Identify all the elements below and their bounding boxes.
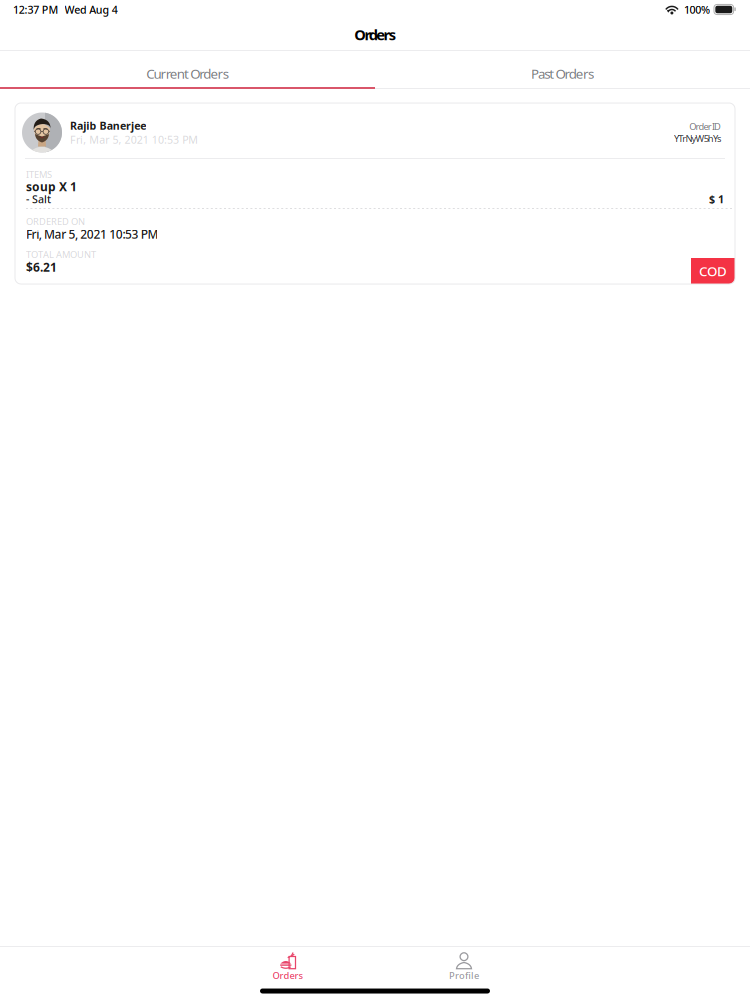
button[interactable]: COD [691, 258, 735, 284]
staticText: Rajib Banerjee [70, 118, 146, 133]
staticText: - Salt [26, 192, 51, 206]
staticText: Orders [272, 969, 303, 982]
staticText: 12:37 PM [13, 2, 59, 17]
staticText: Fri, Mar 5, 2021 10:53 PM [70, 132, 198, 147]
staticText: Orders [354, 25, 396, 44]
button[interactable]: Current Orders [0, 51, 375, 89]
staticText: COD [699, 262, 727, 280]
staticText: YTrNyW5hYs [674, 132, 721, 145]
staticText: soup X 1 [26, 178, 77, 194]
staticText: $6.21 [26, 259, 57, 275]
staticText: $ 1 [709, 192, 724, 206]
staticText: 100% [684, 2, 710, 17]
staticText: Wed Aug 4 [65, 2, 118, 17]
button[interactable]: Profile [376, 950, 552, 982]
staticText: ORDERED ON [26, 215, 85, 228]
button[interactable]: Past Orders [375, 51, 750, 89]
staticText: ITEMS [26, 168, 52, 181]
staticText: Fri, Mar 5, 2021 10:53 PM [26, 226, 158, 242]
staticText: Order ID [689, 120, 721, 133]
staticText: Current Orders [146, 65, 229, 82]
button[interactable]: Orders [200, 950, 376, 982]
staticText: TOTAL AMOUNT [26, 248, 96, 261]
staticText: Profile [449, 969, 479, 982]
staticText: Past Orders [531, 65, 594, 82]
